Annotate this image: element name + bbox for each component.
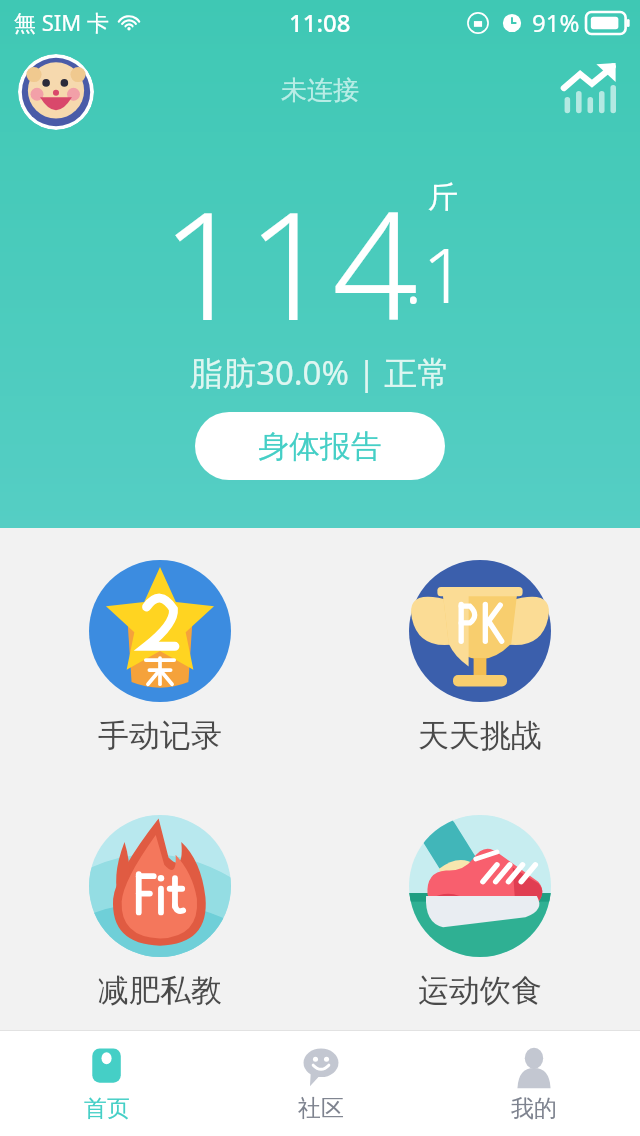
staticText: 运动饮食 [418, 971, 542, 1010]
staticText: 114 [161, 160, 418, 364]
staticText: 我的 [511, 1094, 557, 1123]
staticText: 手动记录 [98, 716, 222, 755]
staticText: 天天挑战 [418, 716, 542, 755]
staticText: 無 SIM 卡 [14, 7, 109, 37]
staticText: 身体报告 [258, 427, 382, 466]
button[interactable]: 手动记录 [0, 556, 320, 759]
staticText: 减肥私教 [98, 971, 222, 1010]
button[interactable]: 减肥私教 [0, 811, 320, 1014]
staticText: 脂肪30.0% | 正常 [190, 350, 451, 395]
staticText: 11:08 [289, 6, 351, 39]
button[interactable]: 我的 [427, 1031, 640, 1136]
button[interactable]: 天天挑战 [320, 556, 640, 759]
staticText: .1 [404, 222, 466, 326]
button[interactable]: 身体报告 [195, 412, 445, 480]
staticText: 91% [532, 6, 580, 39]
staticText: 斤 [428, 178, 458, 216]
button[interactable]: 首页 [0, 1031, 214, 1136]
button[interactable]: 运动饮食 [320, 811, 640, 1014]
staticText: 首页 [84, 1094, 130, 1123]
button[interactable]: Profile [18, 54, 94, 130]
button[interactable]: Trends chart [552, 54, 626, 128]
staticText: 社区 [298, 1094, 344, 1123]
staticText: 未连接 [281, 74, 359, 107]
button[interactable]: 社区 [214, 1031, 427, 1136]
